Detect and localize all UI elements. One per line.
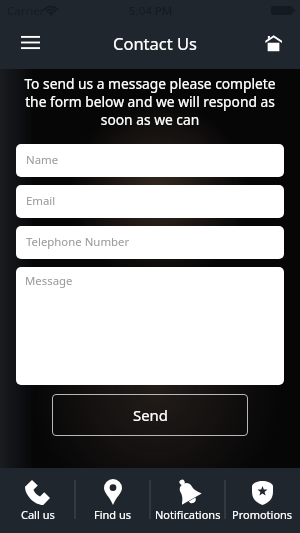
button[interactable]: Notifications <box>150 468 225 533</box>
staticText: Carrier <box>7 3 45 19</box>
staticText: Contact Us <box>113 32 197 54</box>
staticText: Telephone Number <box>26 234 130 250</box>
staticText: Notifications <box>155 507 221 522</box>
staticText: Email <box>26 193 56 209</box>
button[interactable]: Call us <box>0 468 75 533</box>
staticText: To send us a message please complete the… <box>18 74 282 129</box>
staticText: Find us <box>94 507 132 522</box>
button[interactable]: Email <box>16 185 284 218</box>
staticText: Name <box>26 152 59 168</box>
staticText: Message <box>25 273 73 289</box>
button[interactable]: Message <box>16 267 284 385</box>
staticText: 5:04 PM <box>129 3 173 19</box>
staticText: Promotions <box>232 507 293 522</box>
button[interactable]: Name <box>16 144 284 177</box>
button[interactable]: Telephone Number <box>16 226 284 259</box>
button[interactable]: Promotions <box>225 468 300 533</box>
button[interactable]: Find us <box>75 468 150 533</box>
button[interactable]: Menu <box>10 22 50 62</box>
button[interactable]: Home <box>253 23 293 63</box>
staticText: Call us <box>21 507 55 522</box>
staticText: Send <box>133 405 168 425</box>
button[interactable]: Send <box>52 394 248 436</box>
